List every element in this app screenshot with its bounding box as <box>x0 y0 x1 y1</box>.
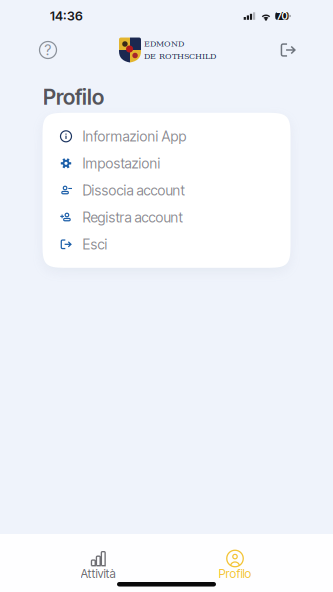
button[interactable]: Attività <box>29 551 166 581</box>
staticText: ? <box>44 41 51 59</box>
staticText: Attività <box>80 566 115 581</box>
staticText: Impostazioni <box>82 155 160 172</box>
staticText: 70 <box>276 10 287 22</box>
staticText: DE ROTHSCHILD <box>144 51 216 61</box>
button[interactable]: Registra account <box>42 204 290 231</box>
button[interactable]: Profilo <box>166 551 303 581</box>
staticText: 14:36 <box>50 8 83 24</box>
button[interactable]: Impostazioni <box>42 150 290 177</box>
button[interactable]: Dissocia account <box>42 177 290 204</box>
staticText: Informazioni App <box>82 128 186 145</box>
staticText: Dissocia account <box>82 182 184 199</box>
button[interactable]: Informazioni App <box>42 123 290 150</box>
staticText: EDMOND <box>144 39 184 48</box>
staticText: Esci <box>82 236 107 253</box>
staticText: Profilo <box>43 84 104 110</box>
button[interactable]: Esci <box>271 33 305 67</box>
staticText: Registra account <box>82 209 182 226</box>
button[interactable]: Aiuto <box>31 33 65 67</box>
staticText: Profilo <box>218 566 251 581</box>
button[interactable]: Esci <box>42 231 290 258</box>
